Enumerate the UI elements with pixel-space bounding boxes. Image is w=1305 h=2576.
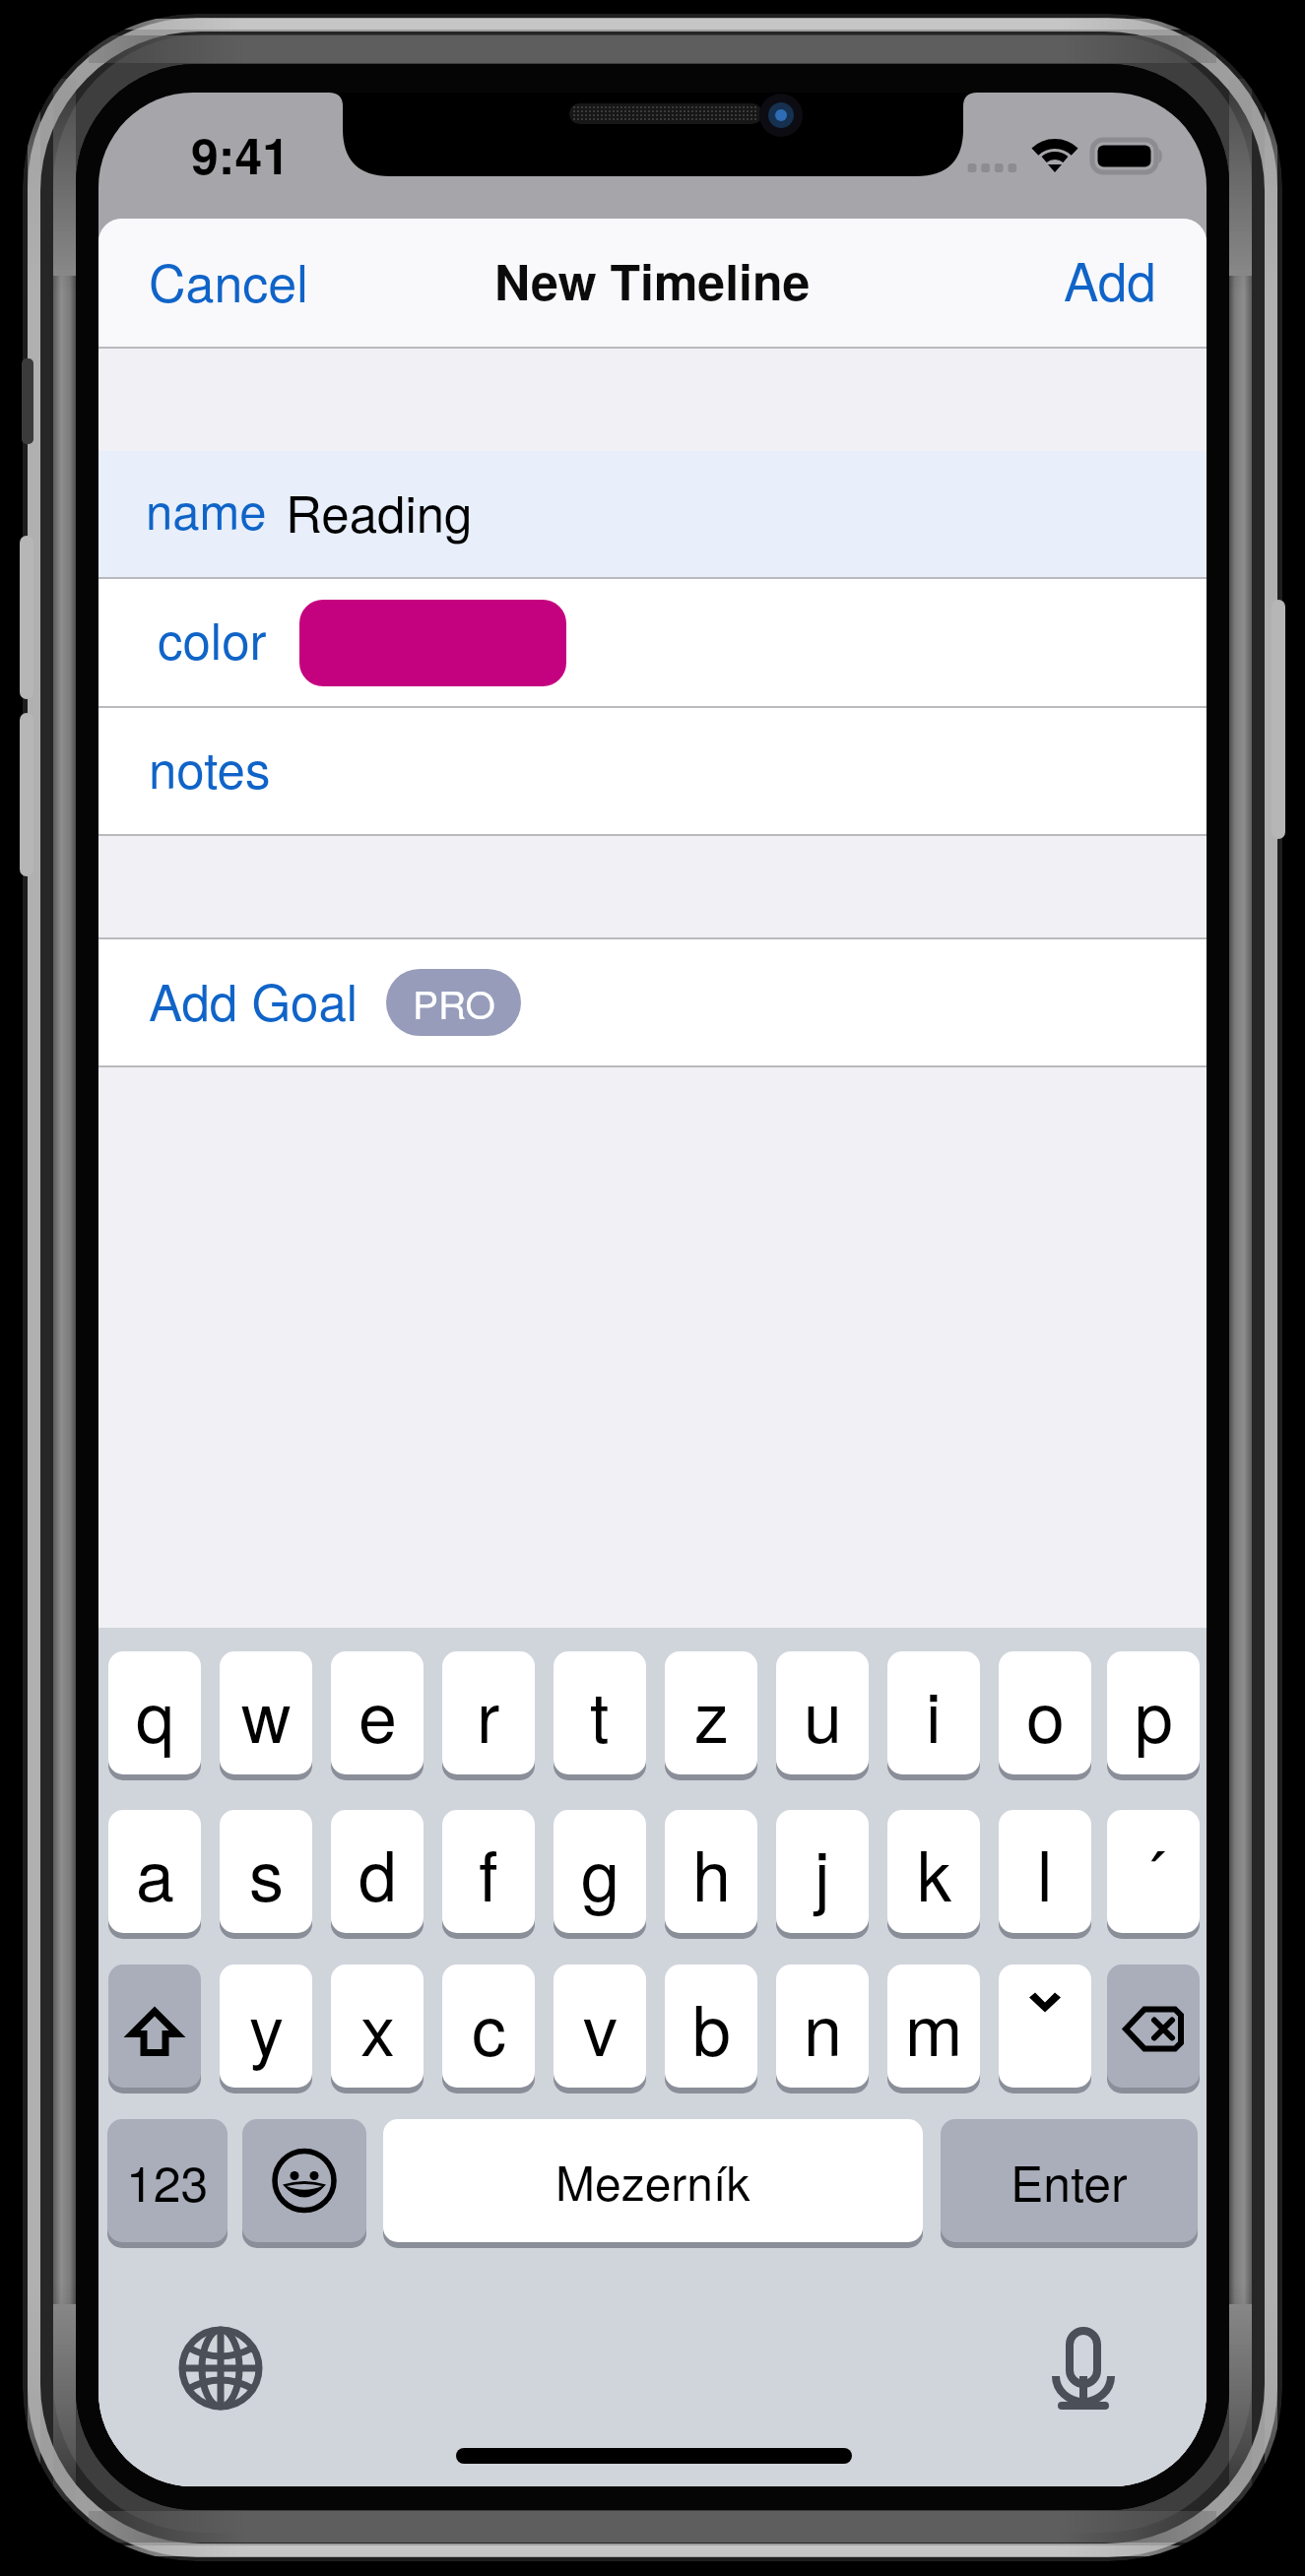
- staticText: a: [136, 1823, 174, 1921]
- staticText: k: [917, 1823, 951, 1921]
- button[interactable]: g: [554, 1810, 646, 1933]
- button[interactable]: u: [776, 1651, 869, 1774]
- staticText: v: [583, 1977, 618, 2076]
- button[interactable]: v: [554, 1964, 646, 2088]
- staticText: q: [136, 1664, 174, 1763]
- staticText: t: [590, 1664, 610, 1763]
- button[interactable]: q: [108, 1651, 201, 1774]
- staticText: r: [477, 1664, 500, 1763]
- button[interactable]: Dictation: [1036, 2321, 1131, 2415]
- button[interactable]: r: [442, 1651, 535, 1774]
- button[interactable]: f: [442, 1810, 535, 1933]
- button[interactable]: t: [554, 1651, 646, 1774]
- staticText: PRO: [413, 975, 495, 1030]
- staticText: notes: [149, 731, 271, 803]
- button[interactable]: c: [442, 1964, 535, 2088]
- button[interactable]: Shift: [108, 1964, 201, 2088]
- staticText: f: [479, 1823, 498, 1921]
- staticText: z: [694, 1664, 729, 1763]
- staticText: j: [815, 1823, 830, 1921]
- button[interactable]: i: [887, 1651, 980, 1774]
- staticText: n: [804, 1977, 842, 2076]
- staticText: y: [249, 1977, 284, 2076]
- button[interactable]: Add: [1013, 225, 1207, 343]
- staticText: m: [905, 1977, 963, 2076]
- button[interactable]: m: [887, 1964, 980, 2088]
- staticText: w: [241, 1664, 292, 1763]
- staticText: 123: [126, 2146, 209, 2217]
- button[interactable]: Add Goal: [98, 939, 1207, 1065]
- staticText: d: [359, 1823, 397, 1921]
- staticText: b: [692, 1977, 731, 2076]
- staticText: New Timeline: [494, 245, 811, 316]
- button[interactable]: name: [98, 451, 1207, 577]
- staticText: g: [581, 1823, 620, 1921]
- button[interactable]: p: [1107, 1651, 1200, 1774]
- staticText: Add Goal: [149, 963, 359, 1035]
- staticText: name: [146, 475, 267, 544]
- button[interactable]: h: [665, 1810, 757, 1933]
- staticText: Mezerník: [555, 2147, 750, 2215]
- staticText: Cancel: [149, 243, 308, 316]
- staticText: e: [359, 1664, 397, 1763]
- button[interactable]: 123: [107, 2119, 228, 2242]
- button[interactable]: a: [108, 1810, 201, 1933]
- button[interactable]: e: [331, 1651, 424, 1774]
- staticText: l: [1037, 1823, 1053, 1921]
- button[interactable]: w: [220, 1651, 312, 1774]
- button[interactable]: n: [776, 1964, 869, 2088]
- staticText: Reading: [286, 475, 473, 547]
- staticText: i: [926, 1664, 942, 1763]
- button[interactable]: y: [220, 1964, 312, 2088]
- staticText: p: [1135, 1664, 1173, 1763]
- button[interactable]: notes: [98, 708, 1207, 834]
- button[interactable]: Emoji: [242, 2119, 366, 2242]
- button[interactable]: Mezerník: [383, 2119, 923, 2242]
- button[interactable]: l: [999, 1810, 1091, 1933]
- staticText: o: [1026, 1664, 1065, 1763]
- staticText: c: [472, 1977, 506, 2076]
- button[interactable]: Cancel: [98, 225, 359, 342]
- staticText: u: [804, 1664, 842, 1763]
- staticText: h: [692, 1823, 731, 1921]
- staticText: s: [249, 1823, 284, 1921]
- staticText: Enter: [1011, 2146, 1128, 2217]
- button[interactable]: o: [999, 1651, 1091, 1774]
- staticText: 9:41: [191, 119, 291, 190]
- button[interactable]: x: [331, 1964, 424, 2088]
- button[interactable]: d: [331, 1810, 424, 1933]
- button[interactable]: Backspace: [1107, 1964, 1200, 2088]
- button[interactable]: Next keyboard: [173, 2321, 268, 2415]
- button[interactable]: color: [98, 579, 1207, 706]
- button[interactable]: Enter: [941, 2119, 1198, 2242]
- staticText: x: [360, 1977, 395, 2076]
- button[interactable]: z: [665, 1651, 757, 1774]
- button[interactable]: s: [220, 1810, 312, 1933]
- button[interactable]: b: [665, 1964, 757, 2088]
- staticText: Add: [1064, 241, 1156, 316]
- button[interactable]: j: [776, 1810, 869, 1933]
- button[interactable]: k: [887, 1810, 980, 1933]
- staticText: ´: [1142, 1823, 1165, 1921]
- button[interactable]: ´: [1107, 1810, 1200, 1933]
- button[interactable]: Caron: [999, 1964, 1091, 2088]
- staticText: color: [158, 602, 267, 674]
